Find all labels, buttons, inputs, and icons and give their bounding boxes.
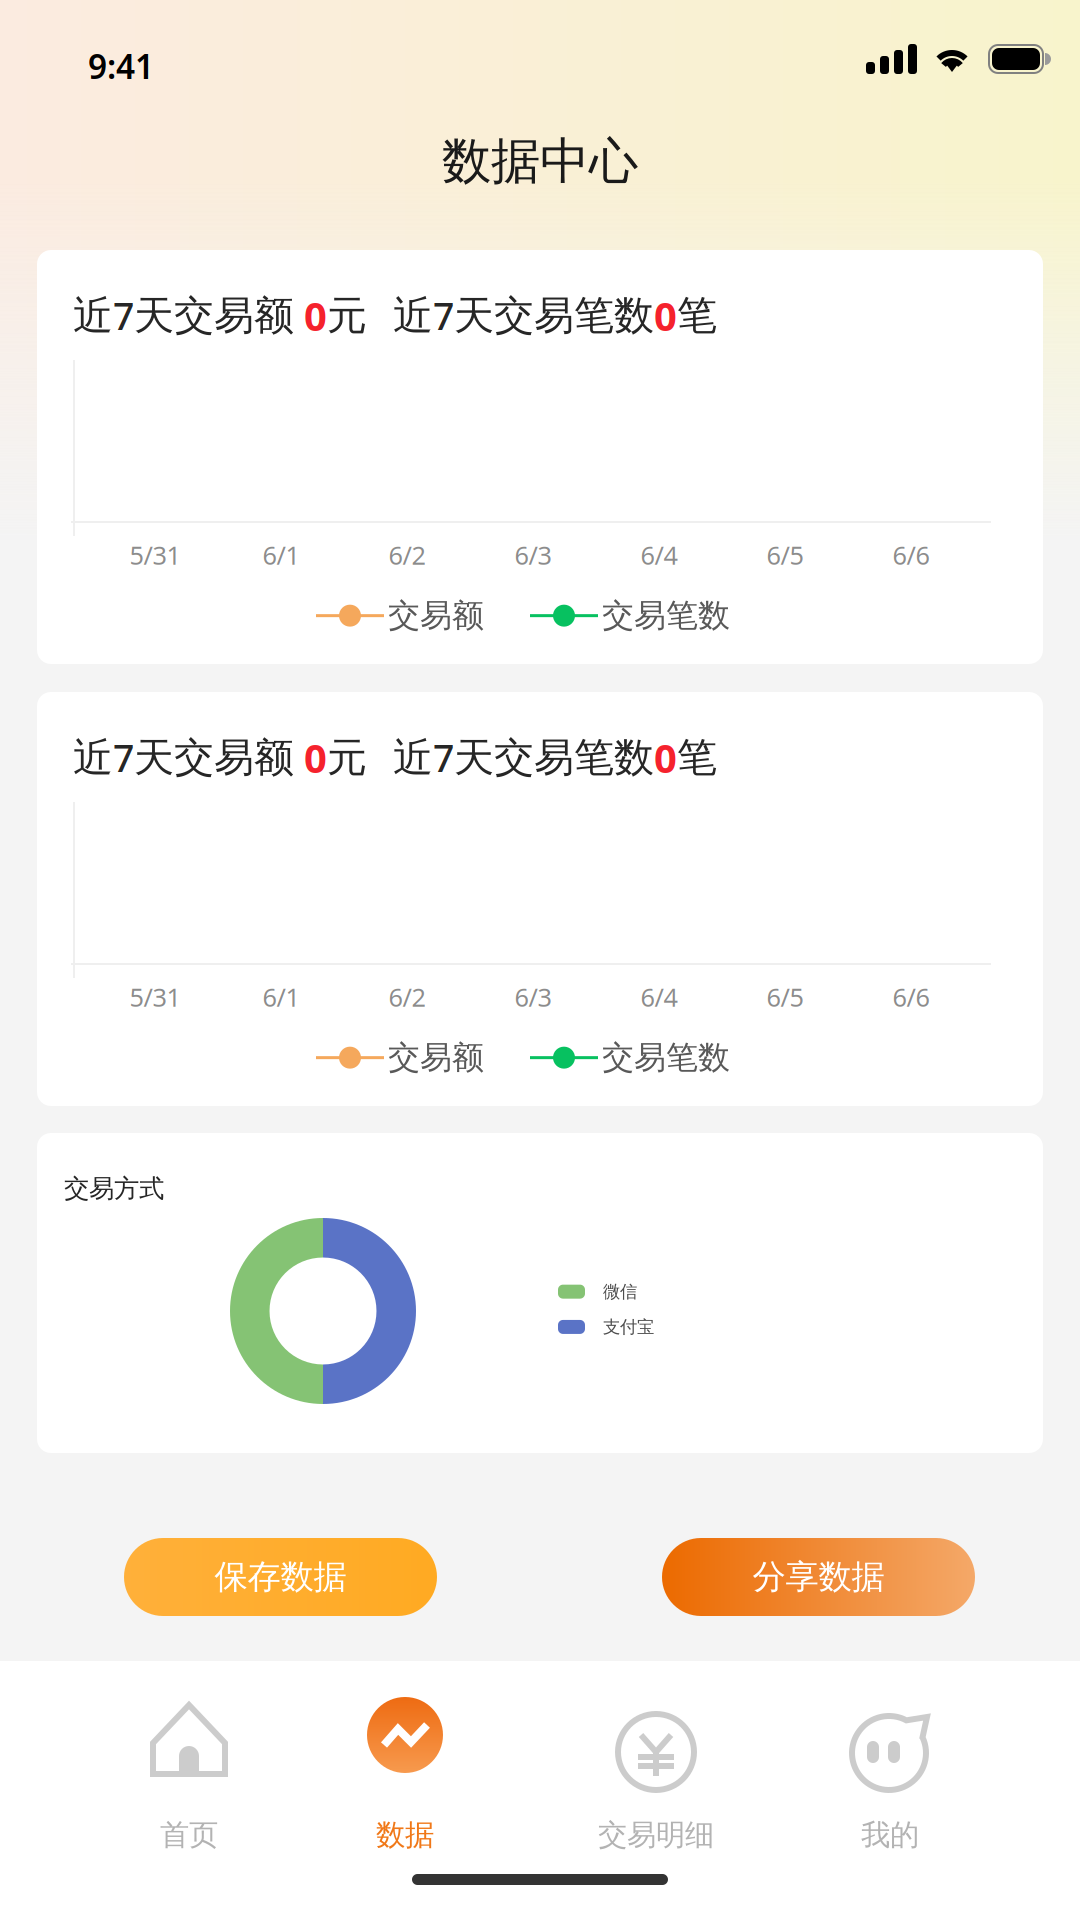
staticText: 6/5 bbox=[766, 538, 803, 572]
staticText: 分享数据 bbox=[752, 1556, 884, 1597]
staticText: 交易笔数 bbox=[602, 1038, 730, 1077]
staticText: 我的 bbox=[861, 1817, 919, 1853]
staticText: 交易明细 bbox=[598, 1817, 714, 1853]
button[interactable]: 数据 bbox=[285, 1661, 525, 1860]
staticText: 元 bbox=[327, 291, 367, 340]
staticText: 支付宝 bbox=[603, 1316, 654, 1338]
staticText: 6/1 bbox=[262, 980, 299, 1014]
staticText: 数据中心 bbox=[442, 131, 638, 192]
staticText: 数据 bbox=[376, 1817, 434, 1853]
button[interactable]: 首页 bbox=[69, 1661, 309, 1860]
staticText: 6/6 bbox=[892, 980, 929, 1014]
staticText: 近 bbox=[393, 291, 433, 340]
button[interactable]: 分享数据 bbox=[662, 1538, 975, 1616]
staticText: 元 bbox=[327, 733, 367, 782]
staticText: 首页 bbox=[160, 1817, 218, 1853]
staticText: 5/31 bbox=[129, 980, 180, 1014]
staticText: 6/5 bbox=[766, 980, 803, 1014]
staticText: 近 bbox=[73, 733, 113, 782]
staticText: 天交易笔数 bbox=[454, 733, 654, 782]
staticText: 5/31 bbox=[129, 538, 180, 572]
staticText: 天交易额 bbox=[134, 733, 294, 782]
staticText: 0 bbox=[654, 289, 677, 342]
staticText: 6/2 bbox=[388, 538, 425, 572]
staticText: 9:41 bbox=[88, 44, 154, 88]
button[interactable]: 交易明细 bbox=[536, 1661, 776, 1860]
staticText: 6/3 bbox=[514, 980, 551, 1014]
staticText: 6/3 bbox=[514, 538, 551, 572]
staticText: 6/1 bbox=[262, 538, 299, 572]
staticText: 近 bbox=[73, 291, 113, 340]
staticText: 天交易额 bbox=[134, 291, 294, 340]
staticText: 7 bbox=[433, 733, 454, 782]
button[interactable]: 保存数据 bbox=[124, 1538, 437, 1616]
staticText: 天交易笔数 bbox=[454, 291, 654, 340]
staticText: 6/2 bbox=[388, 980, 425, 1014]
staticText: 交易额 bbox=[388, 1038, 484, 1077]
staticText: 7 bbox=[433, 291, 454, 340]
staticText: 交易笔数 bbox=[602, 596, 730, 635]
staticText: 6/4 bbox=[640, 538, 677, 572]
staticText: 笔 bbox=[677, 291, 717, 340]
staticText: 保存数据 bbox=[214, 1556, 346, 1597]
staticText: 0 bbox=[654, 731, 677, 784]
staticText: 7 bbox=[113, 291, 134, 340]
staticText: 交易额 bbox=[388, 596, 484, 635]
staticText: 交易方式 bbox=[64, 1173, 164, 1204]
staticText: 0 bbox=[304, 731, 327, 784]
button[interactable]: 我的 bbox=[770, 1661, 1010, 1860]
staticText: 6/4 bbox=[640, 980, 677, 1014]
staticText: 近 bbox=[393, 733, 433, 782]
staticText: 6/6 bbox=[892, 538, 929, 572]
staticText: 0 bbox=[304, 289, 327, 342]
staticText: 微信 bbox=[603, 1281, 637, 1302]
staticText: 7 bbox=[113, 733, 134, 782]
staticText: 笔 bbox=[677, 733, 717, 782]
